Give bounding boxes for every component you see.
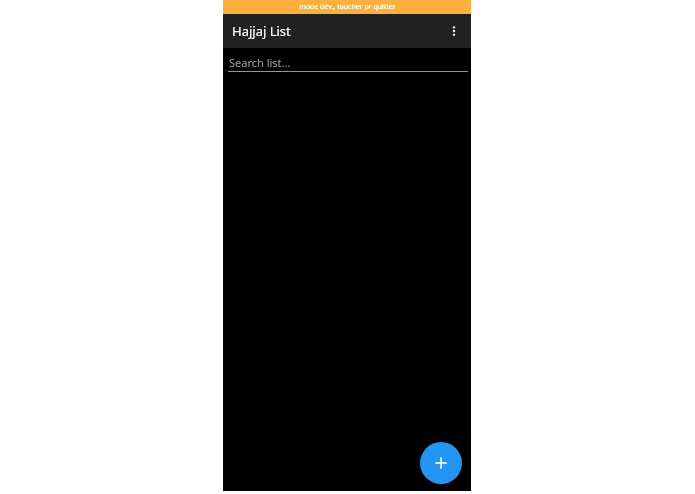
staticText: Hajjaj List xyxy=(232,22,291,40)
button[interactable]: mode dév., toucher pr quitter xyxy=(223,0,471,14)
staticText: Search list... xyxy=(229,55,291,70)
staticText: mode dév., toucher pr quitter xyxy=(299,2,396,12)
button[interactable]: Add xyxy=(420,442,462,484)
button[interactable]: Search list... xyxy=(223,48,471,72)
button[interactable]: More options xyxy=(437,14,471,48)
